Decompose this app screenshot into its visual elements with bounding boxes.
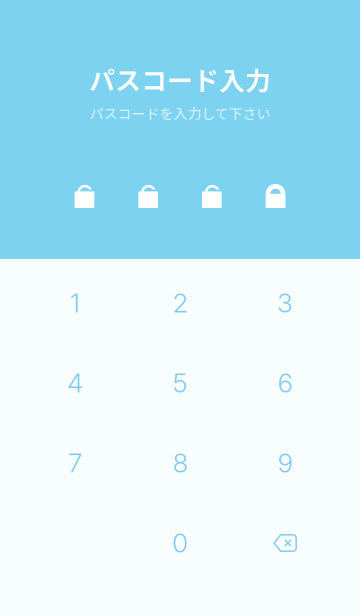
staticText: 8 [172,447,187,479]
button[interactable]: 5 [127,343,232,423]
staticText: 9 [277,447,292,479]
button[interactable]: Delete [232,503,337,583]
staticText: パスコード入力 [89,60,271,98]
staticText: 7 [68,447,82,479]
staticText: 6 [277,367,292,399]
button[interactable]: 4 [22,343,127,423]
staticText: パスコードを入力して下さい [89,103,270,123]
button[interactable]: 9 [232,423,337,503]
button[interactable]: 1 [22,263,127,343]
staticText: 0 [172,527,188,559]
staticText: 2 [172,287,187,319]
button[interactable]: 0 [127,503,232,583]
staticText: 4 [67,367,83,399]
button[interactable]: 8 [127,423,232,503]
button[interactable]: 7 [22,423,127,503]
staticText: 3 [277,287,293,319]
button[interactable]: 2 [127,263,232,343]
staticText: 1 [70,287,80,319]
staticText: 5 [172,367,187,399]
button[interactable]: 3 [232,263,337,343]
button[interactable]: 6 [232,343,337,423]
